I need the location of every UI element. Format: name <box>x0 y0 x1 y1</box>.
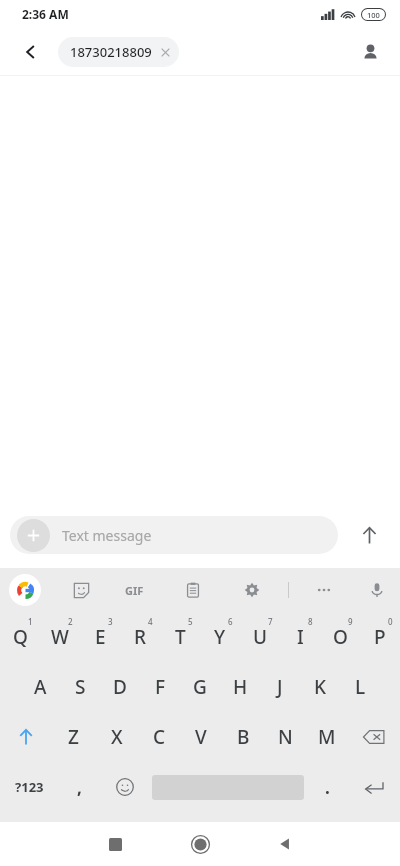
staticText: I <box>297 624 304 650</box>
button[interactable]: Recent apps <box>95 824 135 864</box>
staticText: S <box>75 674 86 700</box>
staticText: X <box>111 724 123 750</box>
button[interactable]: Stickers <box>64 573 98 607</box>
staticText: V <box>195 724 207 750</box>
button[interactable]: 18730218809 <box>58 37 179 67</box>
button[interactable]: M <box>306 712 348 762</box>
staticText: 6 <box>228 616 233 627</box>
staticText: O <box>333 624 348 650</box>
button[interactable]: S <box>60 662 100 712</box>
staticText: GIF <box>125 583 144 598</box>
button[interactable]: , <box>58 762 100 812</box>
button[interactable]: O <box>320 612 360 662</box>
button[interactable]: F <box>140 662 180 712</box>
staticText: J <box>277 674 283 700</box>
button[interactable]: Shift <box>0 712 52 762</box>
button[interactable]: GIF <box>116 572 152 608</box>
button[interactable]: W <box>40 612 80 662</box>
button[interactable]: U <box>240 612 280 662</box>
staticText: F <box>155 674 166 700</box>
button[interactable]: Y <box>200 612 240 662</box>
button[interactable]: D <box>100 662 140 712</box>
button[interactable]: J <box>260 662 300 712</box>
button[interactable]: Back <box>14 35 48 69</box>
button[interactable]: C <box>138 712 180 762</box>
button[interactable]: Back <box>265 824 305 864</box>
button[interactable]: Enter <box>348 762 400 812</box>
staticText: P <box>374 624 386 650</box>
button[interactable]: Z <box>52 712 95 762</box>
button[interactable]: Backspace <box>348 712 400 762</box>
staticText: 0 <box>388 616 393 627</box>
button[interactable]: Voice input <box>360 573 394 607</box>
button[interactable]: . <box>306 762 348 812</box>
staticText: H <box>233 674 248 700</box>
button[interactable]: Home <box>180 824 220 864</box>
staticText: 5 <box>188 616 193 627</box>
button[interactable]: L <box>340 662 380 712</box>
staticText: C <box>153 724 166 750</box>
button[interactable]: Add attachment <box>10 516 338 554</box>
staticText: E <box>95 624 106 650</box>
staticText: . <box>325 776 330 799</box>
button[interactable]: Q <box>0 612 40 662</box>
button[interactable]: ?123 <box>0 762 58 812</box>
button[interactable]: Emoji <box>100 762 150 812</box>
button[interactable]: T <box>160 612 200 662</box>
staticText: B <box>237 724 250 750</box>
button[interactable]: N <box>264 712 306 762</box>
staticText: 8 <box>308 616 313 627</box>
button[interactable]: More options <box>307 573 341 607</box>
button[interactable]: Google search <box>9 574 41 606</box>
button[interactable]: K <box>300 662 340 712</box>
staticText: D <box>113 674 127 700</box>
button[interactable]: Contact details <box>352 34 388 70</box>
staticText: A <box>34 674 47 700</box>
button[interactable]: A <box>20 662 60 712</box>
staticText: G <box>193 674 207 700</box>
staticText: L <box>355 674 366 700</box>
button[interactable]: I <box>280 612 320 662</box>
staticText: Text message <box>62 526 152 545</box>
staticText: M <box>318 724 336 750</box>
staticText: W <box>51 624 69 650</box>
staticText: 1 <box>28 616 33 627</box>
staticText: 9 <box>348 616 353 627</box>
staticText: 7 <box>268 616 273 627</box>
button[interactable]: X <box>95 712 138 762</box>
button[interactable]: Clipboard <box>176 573 210 607</box>
staticText: T <box>175 624 186 650</box>
staticText: U <box>253 624 268 650</box>
staticText: Y <box>214 624 226 650</box>
staticText: 3 <box>108 616 113 627</box>
button[interactable]: Send <box>338 513 400 557</box>
button[interactable]: Add attachment <box>17 519 50 552</box>
staticText: K <box>314 674 327 700</box>
button[interactable]: P <box>360 612 400 662</box>
staticText: R <box>134 624 147 650</box>
button[interactable]: R <box>120 612 160 662</box>
button[interactable]: Settings <box>235 573 269 607</box>
staticText: 4 <box>148 616 153 627</box>
staticText: 18730218809 <box>70 43 152 61</box>
staticText: Z <box>68 724 79 750</box>
button[interactable]: G <box>180 662 220 712</box>
button[interactable]: E <box>80 612 120 662</box>
button[interactable]: B <box>222 712 264 762</box>
button[interactable]: V <box>180 712 222 762</box>
staticText: Q <box>13 624 28 650</box>
staticText: 100 <box>367 10 380 20</box>
staticText: N <box>278 724 293 750</box>
staticText: , <box>77 776 82 799</box>
staticText: 2 <box>68 616 73 627</box>
staticText: ?123 <box>15 778 44 796</box>
button[interactable]: H <box>220 662 260 712</box>
staticText: 2:36 AM <box>22 6 69 22</box>
